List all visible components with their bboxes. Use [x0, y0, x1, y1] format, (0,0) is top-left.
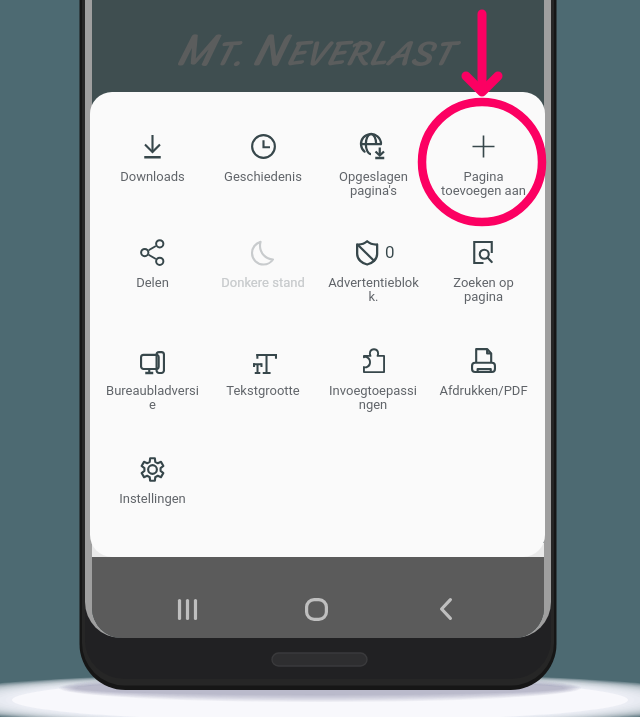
- staticText: Geschiedenis: [224, 169, 302, 184]
- button[interactable]: Afdrukken/PDF: [428, 308, 538, 416]
- button[interactable]: Recent apps: [163, 585, 211, 633]
- button[interactable]: Donkere stand: [208, 200, 318, 308]
- button[interactable]: Delen: [97, 200, 208, 308]
- button[interactable]: Downloads: [97, 92, 208, 200]
- button[interactable]: Back: [422, 585, 470, 633]
- button[interactable]: Home: [292, 585, 340, 633]
- staticText: Delen: [136, 275, 169, 290]
- staticText: Bureaubladversi e: [106, 383, 199, 413]
- button[interactable]: Pagina toevoegen aan: [428, 92, 538, 200]
- staticText: 0: [385, 242, 395, 262]
- button[interactable]: Zoeken op pagina: [428, 200, 538, 308]
- button[interactable]: Opgeslagen pagina's: [318, 92, 428, 200]
- staticText: Tekstgrootte: [226, 383, 300, 398]
- button[interactable]: Instellingen: [97, 416, 208, 524]
- staticText: Invoegtoepassi ngen: [329, 383, 417, 413]
- button[interactable]: Geschiedenis: [208, 92, 318, 200]
- staticText: Pagina toevoegen aan: [441, 169, 526, 199]
- staticText: Opgeslagen pagina's: [339, 169, 408, 199]
- button[interactable]: 0: [318, 200, 428, 308]
- staticText: Donkere stand: [221, 275, 305, 290]
- button[interactable]: Invoegtoepassi ngen: [318, 308, 428, 416]
- staticText: Instellingen: [119, 491, 186, 506]
- staticText: Zoeken op pagina: [453, 275, 514, 305]
- button[interactable]: Bureaubladversi e: [97, 308, 208, 416]
- staticText: Downloads: [120, 169, 185, 184]
- staticText: Afdrukken/PDF: [439, 383, 528, 398]
- button[interactable]: Tekstgrootte: [208, 308, 318, 416]
- staticText: Advertentieblok k.: [328, 275, 419, 305]
- staticText: MT. NEVERLAST: [177, 9, 455, 90]
